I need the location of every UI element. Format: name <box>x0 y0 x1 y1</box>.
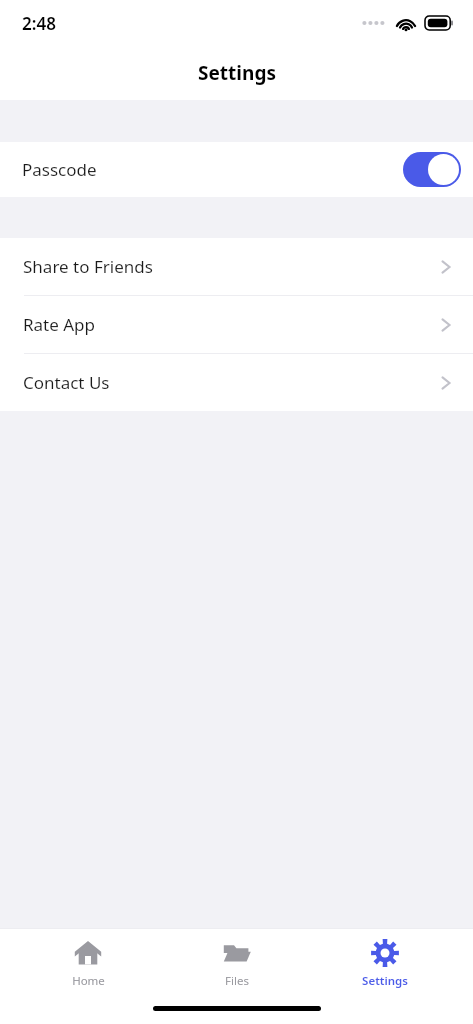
button[interactable]: Share to Friends <box>0 238 473 295</box>
staticText: Rate App <box>23 313 96 336</box>
button[interactable]: Rate App <box>0 296 473 353</box>
staticText: Contact Us <box>23 371 110 394</box>
staticText: 2:48 <box>22 12 56 35</box>
other: Home <box>73 938 103 968</box>
staticText: Files <box>225 973 249 989</box>
button[interactable]: Contact Us <box>0 354 473 411</box>
button[interactable]: Home <box>28 928 148 992</box>
button[interactable]: Passcode toggle, on <box>403 152 461 187</box>
staticText: Share to Friends <box>23 255 153 278</box>
staticText: Home <box>72 973 105 989</box>
staticText: Passcode <box>22 158 97 181</box>
button[interactable]: Settings <box>325 928 445 992</box>
other: Files <box>222 938 252 968</box>
staticText: Settings <box>198 60 276 86</box>
button[interactable]: Files <box>177 928 297 992</box>
button[interactable]: Passcode <box>0 142 473 197</box>
staticText: Settings <box>362 973 408 989</box>
other: Settings <box>370 938 400 968</box>
